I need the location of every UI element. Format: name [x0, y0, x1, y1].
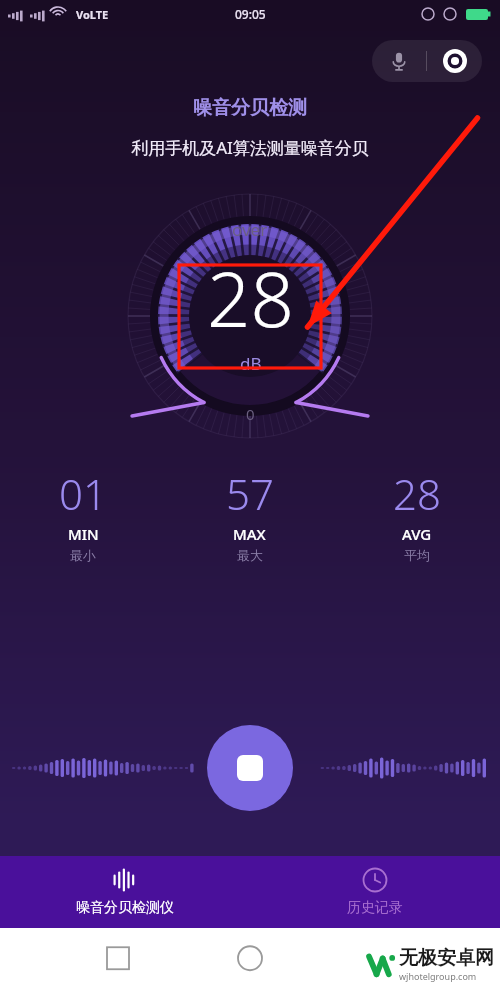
staticText: MAX [233, 524, 266, 544]
button[interactable]: 噪音分贝检测仪 [0, 856, 250, 928]
button[interactable]: Microphone [372, 40, 426, 82]
staticText: AVG [402, 524, 432, 544]
staticText: 09:05 [235, 6, 266, 22]
staticText: 01 [59, 465, 107, 522]
staticText: VoLTE [76, 7, 109, 22]
staticText: dB [240, 352, 262, 375]
staticText: 最大 [237, 547, 263, 563]
button[interactable]: Microphone [372, 40, 482, 82]
staticText: 无极安卓网 [399, 946, 494, 970]
button[interactable]: 57 [166, 465, 333, 563]
staticText: 噪音分贝检测 [0, 96, 500, 120]
staticText: 平均 [404, 547, 430, 563]
button[interactable]: Record [427, 40, 482, 82]
staticText: 噪音分贝检测仪 [76, 899, 174, 917]
staticText: 历史记录 [347, 899, 403, 917]
button[interactable]: Stop [207, 725, 293, 811]
staticText: 最小 [70, 547, 96, 563]
staticText: MIN [68, 524, 99, 544]
staticText: over [232, 218, 268, 241]
staticText: 0 [246, 404, 255, 424]
staticText: 利用手机及AI算法测量噪音分贝 [0, 136, 500, 159]
staticText: 57 [226, 465, 274, 522]
button[interactable]: 01 [0, 465, 166, 563]
staticText: 28 [393, 465, 441, 522]
staticText: 28 [207, 246, 294, 350]
staticText: wjhotelgroup.com [399, 970, 477, 982]
button[interactable]: 28 [333, 465, 500, 563]
button[interactable]: 历史记录 [250, 856, 500, 928]
